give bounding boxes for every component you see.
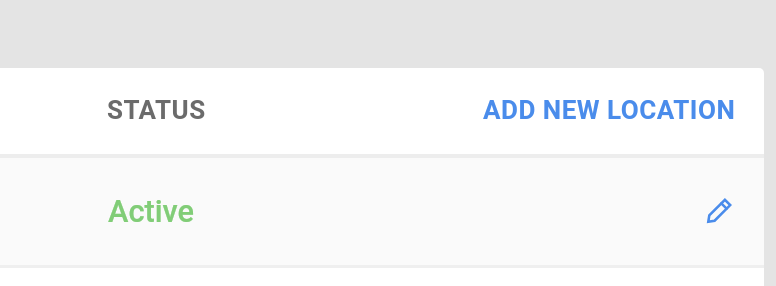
staticText: STATUS: [107, 95, 206, 125]
button[interactable]: Active: [0, 158, 764, 265]
button[interactable]: Edit status: [698, 190, 742, 234]
staticText: ADD NEW LOCATION: [483, 95, 736, 125]
staticText: Active: [108, 194, 195, 230]
button[interactable]: ADD NEW LOCATION: [475, 87, 744, 133]
